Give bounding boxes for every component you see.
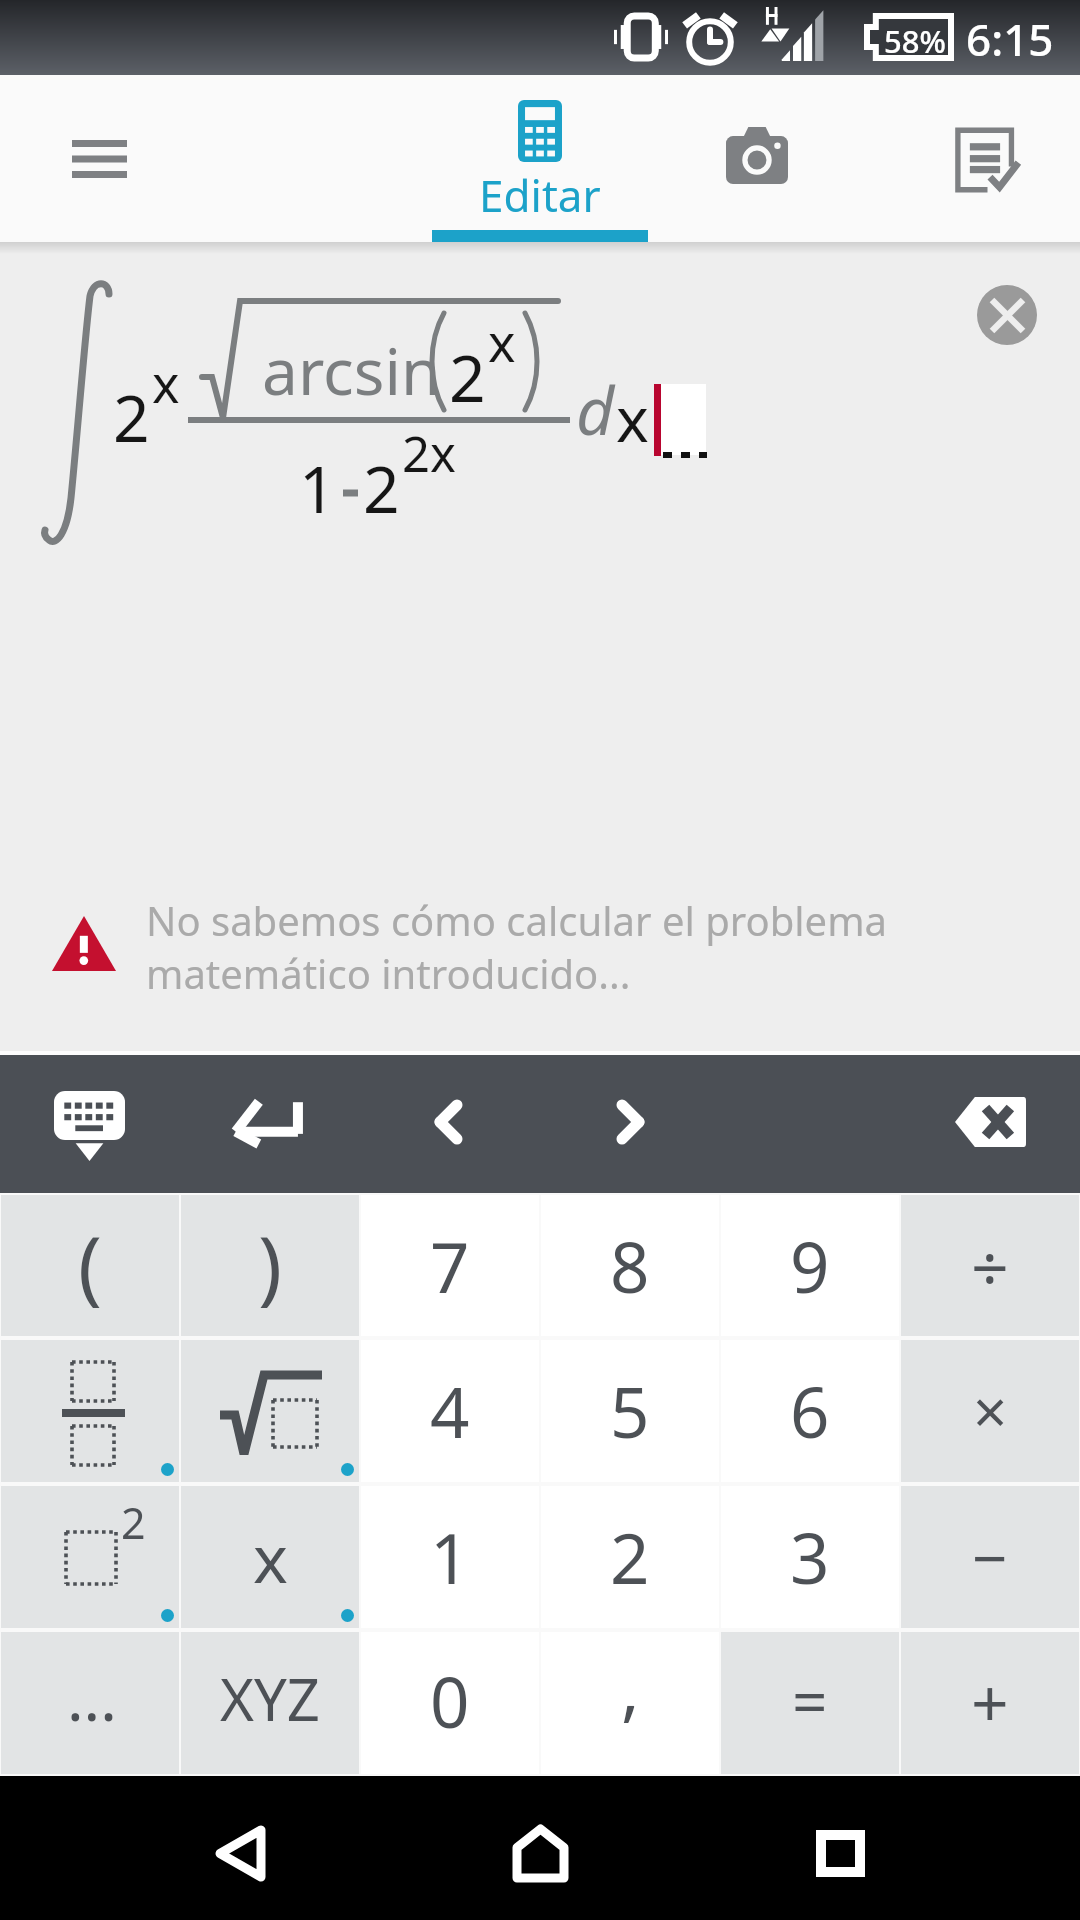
button[interactable]: × bbox=[901, 1340, 1079, 1482]
staticText: 6:15 bbox=[966, 9, 1054, 69]
button[interactable]: 1 bbox=[361, 1486, 539, 1628]
staticText: x bbox=[616, 376, 649, 460]
staticText: 1 bbox=[430, 1510, 470, 1604]
button[interactable]: 0 bbox=[361, 1632, 539, 1774]
button[interactable]: 8 bbox=[541, 1195, 719, 1336]
button[interactable]: ( bbox=[1, 1195, 179, 1336]
button[interactable]: , bbox=[541, 1632, 719, 1774]
button[interactable]: Clear bbox=[977, 285, 1037, 345]
staticText: × bbox=[973, 1370, 1008, 1452]
staticText: , bbox=[621, 1640, 640, 1734]
button[interactable]: 2 bbox=[541, 1486, 719, 1628]
button[interactable]: + bbox=[901, 1632, 1079, 1774]
button[interactable]: Camera bbox=[675, 75, 839, 242]
staticText: 3 bbox=[790, 1510, 830, 1604]
button[interactable]: 7 bbox=[361, 1195, 539, 1336]
button[interactable]: Move left bbox=[381, 1055, 515, 1189]
button[interactable]: 4 bbox=[361, 1340, 539, 1482]
button[interactable]: Back bbox=[168, 1793, 312, 1913]
button[interactable]: Hide keyboard bbox=[22, 1055, 157, 1189]
staticText: 9 bbox=[790, 1219, 830, 1313]
button[interactable]: = bbox=[721, 1632, 899, 1774]
staticText: 58% bbox=[884, 20, 946, 62]
staticText: + bbox=[971, 1656, 1009, 1746]
button[interactable]: Menu bbox=[16, 91, 183, 226]
staticText: 2 bbox=[121, 1493, 146, 1552]
button[interactable]: Editar bbox=[432, 75, 648, 242]
staticText: 8 bbox=[610, 1219, 650, 1313]
staticText: 5 bbox=[610, 1364, 650, 1458]
staticText: x bbox=[152, 347, 180, 418]
staticText: arcsin bbox=[262, 327, 441, 414]
button[interactable]: Notes bbox=[904, 75, 1068, 242]
button[interactable]: 2 bbox=[1, 1486, 179, 1628]
button[interactable]: ÷ bbox=[901, 1195, 1079, 1336]
button[interactable] bbox=[1, 1340, 179, 1482]
staticText: 2 bbox=[363, 445, 400, 532]
staticText: 7 bbox=[430, 1219, 470, 1313]
staticText: x bbox=[253, 1512, 288, 1602]
staticText: 6 bbox=[790, 1364, 830, 1458]
button[interactable]: 3 bbox=[721, 1486, 899, 1628]
staticText: − bbox=[972, 1515, 1008, 1599]
staticText: 2 bbox=[113, 374, 150, 461]
button[interactable]: Move right bbox=[563, 1055, 697, 1189]
staticText: 0 bbox=[430, 1654, 470, 1748]
staticText: = bbox=[792, 1659, 828, 1743]
button[interactable]: x bbox=[181, 1486, 359, 1628]
button[interactable]: 6 bbox=[721, 1340, 899, 1482]
button[interactable]: − bbox=[901, 1486, 1079, 1628]
button[interactable]: Backspace bbox=[922, 1055, 1057, 1189]
staticText: d bbox=[576, 364, 615, 454]
staticText: ( bbox=[78, 1209, 102, 1318]
staticText: Editar bbox=[479, 165, 601, 225]
button[interactable]: Enter bbox=[200, 1055, 335, 1189]
staticText: XYZ bbox=[220, 1659, 320, 1738]
staticText: 2 bbox=[610, 1510, 650, 1604]
button[interactable]: XYZ bbox=[181, 1632, 359, 1774]
staticText: x bbox=[488, 306, 516, 377]
staticText: ... bbox=[67, 1655, 117, 1739]
button[interactable]: ) bbox=[181, 1195, 359, 1336]
staticText: 4 bbox=[430, 1364, 470, 1458]
button[interactable]: Home bbox=[468, 1793, 612, 1913]
button[interactable]: Recents bbox=[768, 1793, 912, 1913]
button[interactable]: 9 bbox=[721, 1195, 899, 1336]
staticText: No sabemos cómo calcular el problema mat… bbox=[146, 893, 887, 1001]
staticText: 1 bbox=[299, 445, 336, 532]
staticText: 2 bbox=[449, 334, 486, 421]
staticText: ) bbox=[258, 1209, 282, 1318]
button[interactable]: 5 bbox=[541, 1340, 719, 1482]
staticText: 2x bbox=[402, 420, 456, 487]
staticText: ÷ bbox=[971, 1221, 1009, 1311]
button[interactable] bbox=[181, 1340, 359, 1482]
button[interactable]: ... bbox=[1, 1632, 179, 1774]
